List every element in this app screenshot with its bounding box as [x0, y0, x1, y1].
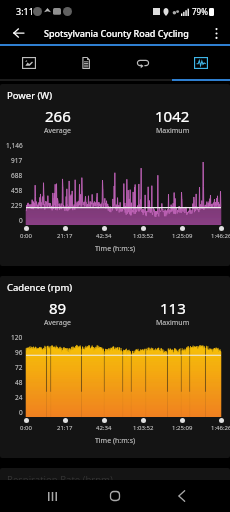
staticText: Average [44, 318, 71, 328]
button[interactable]: Map [0, 46, 57, 79]
staticText: 48 [15, 378, 23, 387]
staticText: 1:25:09 [172, 424, 193, 432]
staticText: 96 [15, 348, 23, 357]
button[interactable]: Cadence (rpm) [0, 276, 230, 458]
staticText: 0 [19, 216, 23, 225]
staticText: 229 [11, 201, 23, 210]
button[interactable]: Home [99, 480, 131, 512]
staticText: 0:00 [20, 232, 32, 240]
staticText: Time (h:m:s) [0, 244, 230, 254]
staticText: 688 [11, 171, 23, 180]
staticText: 917 [11, 156, 23, 165]
staticText: 42:34 [96, 232, 112, 240]
staticText: 21:17 [57, 424, 73, 432]
staticText: 89 [49, 298, 67, 318]
staticText: 458 [11, 186, 23, 195]
button[interactable]: Navigate up [0, 22, 36, 44]
staticText: Maximum [156, 318, 190, 328]
staticText: 266 [45, 106, 71, 126]
button[interactable]: Recent apps [36, 480, 68, 512]
staticText: Maximum [156, 126, 190, 136]
staticText: 42:34 [96, 424, 112, 432]
staticText: 3:11 [16, 5, 34, 17]
button[interactable]: More options [202, 22, 230, 44]
staticText: 1:25:09 [172, 232, 193, 240]
staticText: 1:03:52 [133, 232, 154, 240]
staticText: Respiration Rate (brpm) [7, 473, 113, 486]
staticText: ... [212, 473, 220, 485]
button[interactable]: Laps [114, 46, 172, 79]
staticText: 1:46:26 [211, 424, 230, 432]
staticText: 120 [11, 333, 23, 342]
button[interactable]: Respiration Rate (brpm) [0, 468, 230, 512]
button[interactable]: Details [57, 46, 114, 79]
staticText: 1042 [155, 106, 190, 126]
staticText: Power (W) [7, 89, 53, 102]
staticText: Time (h:m:s) [0, 436, 230, 446]
button[interactable]: Graphs [172, 46, 230, 79]
staticText: 113 [160, 298, 186, 318]
staticText: 0 [19, 408, 23, 417]
staticText: 79% [192, 6, 208, 17]
staticText: 1:46:26 [211, 232, 230, 240]
staticText: 72 [15, 363, 23, 372]
staticText: 1:03:52 [133, 424, 154, 432]
staticText: 21:17 [57, 232, 73, 240]
staticText: 1,146 [6, 141, 23, 150]
button[interactable]: Power (W) [0, 84, 230, 266]
staticText: Average [44, 126, 71, 136]
staticText: 24 [15, 393, 23, 402]
staticText: Spotsylvania County Road Cycling [44, 27, 189, 39]
staticText: 0:00 [20, 424, 32, 432]
button[interactable]: Back [165, 480, 197, 512]
staticText: Cadence (rpm) [7, 281, 73, 294]
